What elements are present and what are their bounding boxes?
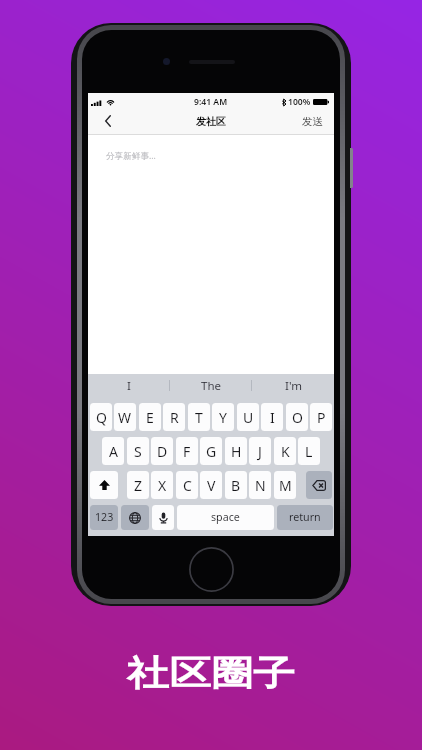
button[interactable]: W xyxy=(114,403,136,431)
button[interactable]: L xyxy=(298,437,320,465)
staticText: E xyxy=(146,408,154,427)
button[interactable]: Backspace xyxy=(306,471,332,499)
button[interactable]: Q xyxy=(90,403,112,431)
staticText: O xyxy=(292,408,303,427)
button[interactable]: return xyxy=(277,505,333,530)
button[interactable]: 发送 xyxy=(291,108,334,134)
staticText: 分享新鲜事... xyxy=(106,150,156,162)
button[interactable]: I xyxy=(88,374,170,397)
staticText: N xyxy=(255,476,266,495)
button[interactable]: I xyxy=(261,403,283,431)
button[interactable]: T xyxy=(188,403,210,431)
staticText: I xyxy=(127,378,131,394)
button[interactable]: D xyxy=(151,437,173,465)
staticText: U xyxy=(243,408,254,427)
staticText: X xyxy=(158,476,167,495)
button[interactable]: K xyxy=(274,437,296,465)
button[interactable]: S xyxy=(127,437,149,465)
staticText: 发送 xyxy=(302,115,323,128)
staticText: A xyxy=(109,442,118,461)
button[interactable]: H xyxy=(225,437,247,465)
staticText: G xyxy=(206,442,217,461)
staticText: S xyxy=(134,442,142,461)
staticText: H xyxy=(231,442,242,461)
button[interactable]: Shift xyxy=(90,471,118,499)
button[interactable]: O xyxy=(286,403,308,431)
staticText: M xyxy=(279,476,292,495)
button[interactable]: U xyxy=(237,403,259,431)
staticText: T xyxy=(195,408,203,427)
button[interactable]: J xyxy=(249,437,271,465)
button[interactable]: X xyxy=(151,471,173,499)
button[interactable]: V xyxy=(200,471,222,499)
button[interactable]: I'm xyxy=(252,374,334,397)
button[interactable]: Y xyxy=(212,403,234,431)
staticText: 9:41 AM xyxy=(194,96,228,108)
button[interactable]: C xyxy=(176,471,198,499)
staticText: I'm xyxy=(285,378,302,394)
staticText: space xyxy=(211,510,240,525)
button[interactable]: N xyxy=(249,471,271,499)
staticText: F xyxy=(183,442,191,461)
button[interactable]: Back xyxy=(92,108,124,134)
button[interactable]: F xyxy=(176,437,198,465)
button[interactable]: The xyxy=(170,374,252,397)
staticText: 100% xyxy=(288,96,311,108)
button[interactable]: G xyxy=(200,437,222,465)
button[interactable]: Z xyxy=(127,471,149,499)
button[interactable]: E xyxy=(139,403,161,431)
staticText: return xyxy=(289,510,321,525)
staticText: C xyxy=(183,476,192,495)
staticText: V xyxy=(207,476,216,495)
button[interactable]: 123 xyxy=(90,505,118,530)
staticText: B xyxy=(231,476,241,495)
button[interactable]: B xyxy=(225,471,247,499)
staticText: L xyxy=(305,442,313,461)
button[interactable]: space xyxy=(177,505,274,530)
button[interactable]: Dictation xyxy=(152,505,174,530)
staticText: P xyxy=(317,408,326,427)
button[interactable]: Next keyboard xyxy=(121,505,149,530)
staticText: Z xyxy=(134,476,143,495)
button[interactable]: P xyxy=(310,403,332,431)
staticText: W xyxy=(118,408,132,427)
button[interactable]: M xyxy=(274,471,296,499)
button[interactable]: R xyxy=(163,403,185,431)
staticText: The xyxy=(201,378,221,394)
staticText: J xyxy=(258,442,262,461)
staticText: 发社区 xyxy=(196,115,226,128)
button[interactable]: A xyxy=(102,437,124,465)
staticText: K xyxy=(281,442,290,461)
staticText: I xyxy=(270,408,275,427)
staticText: 社区圈子 xyxy=(127,652,295,695)
staticText: Y xyxy=(219,408,227,427)
staticText: R xyxy=(170,408,179,427)
staticText: D xyxy=(157,442,168,461)
staticText: 123 xyxy=(95,510,114,525)
staticText: Q xyxy=(96,408,107,427)
